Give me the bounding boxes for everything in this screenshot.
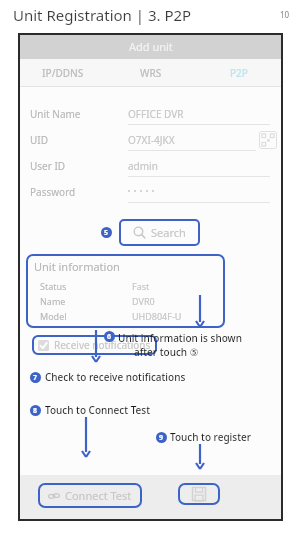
staticText: Model	[40, 310, 67, 322]
staticText: O7XI-4JKX	[128, 133, 175, 147]
button[interactable]: O7XI-4JKX	[128, 129, 256, 151]
staticText: P2P	[230, 66, 248, 80]
staticText: Unit Registration | 3. P2P	[13, 5, 192, 25]
button[interactable]: Connect Test	[38, 483, 142, 508]
staticText: 7	[33, 373, 38, 383]
staticText: Add unit	[129, 39, 173, 54]
button[interactable]: Save / register	[178, 483, 220, 505]
button[interactable]: Scan QR code	[259, 131, 277, 149]
staticText: 8	[33, 406, 38, 416]
staticText: Connect Test	[65, 488, 132, 503]
staticText: Unit information	[34, 259, 120, 274]
button[interactable]: OFFICE DVR	[128, 103, 270, 125]
staticText: Unit information is shown	[118, 331, 242, 345]
staticText: Fast	[132, 280, 150, 292]
staticText: User ID	[30, 159, 66, 173]
staticText: UHD804F-U	[132, 310, 182, 322]
button[interactable]: P2P	[195, 66, 283, 80]
staticText: Name	[40, 295, 66, 307]
button[interactable]: IP/DDNS	[18, 66, 107, 80]
staticText: Touch to register	[170, 430, 251, 444]
staticText: Status	[40, 280, 67, 292]
staticText: WRS	[140, 66, 162, 80]
staticText: Check to receive notifications	[45, 370, 186, 384]
staticText: IP/DDNS	[42, 66, 84, 80]
staticText: Search	[151, 225, 186, 240]
staticText: after touch ⑤	[134, 345, 199, 359]
staticText: Touch to Connect Test	[45, 403, 151, 417]
staticText: admin	[128, 159, 158, 173]
staticText: 5	[104, 228, 109, 238]
button[interactable]: WRS	[107, 66, 195, 80]
button[interactable]: admin	[128, 155, 270, 177]
staticText: Unit Name	[30, 107, 81, 121]
staticText: 9	[159, 433, 164, 443]
staticText: 10	[280, 9, 290, 20]
button[interactable]	[128, 181, 270, 203]
staticText: 6	[107, 332, 112, 342]
staticText: Receive notifications	[54, 338, 151, 352]
staticText: Password	[30, 185, 76, 199]
button[interactable]: Receive notifications	[32, 335, 157, 355]
staticText: UID	[30, 133, 48, 147]
staticText: OFFICE DVR	[128, 107, 184, 121]
staticText: DVR0	[132, 295, 155, 307]
button[interactable]: Search	[121, 221, 198, 244]
